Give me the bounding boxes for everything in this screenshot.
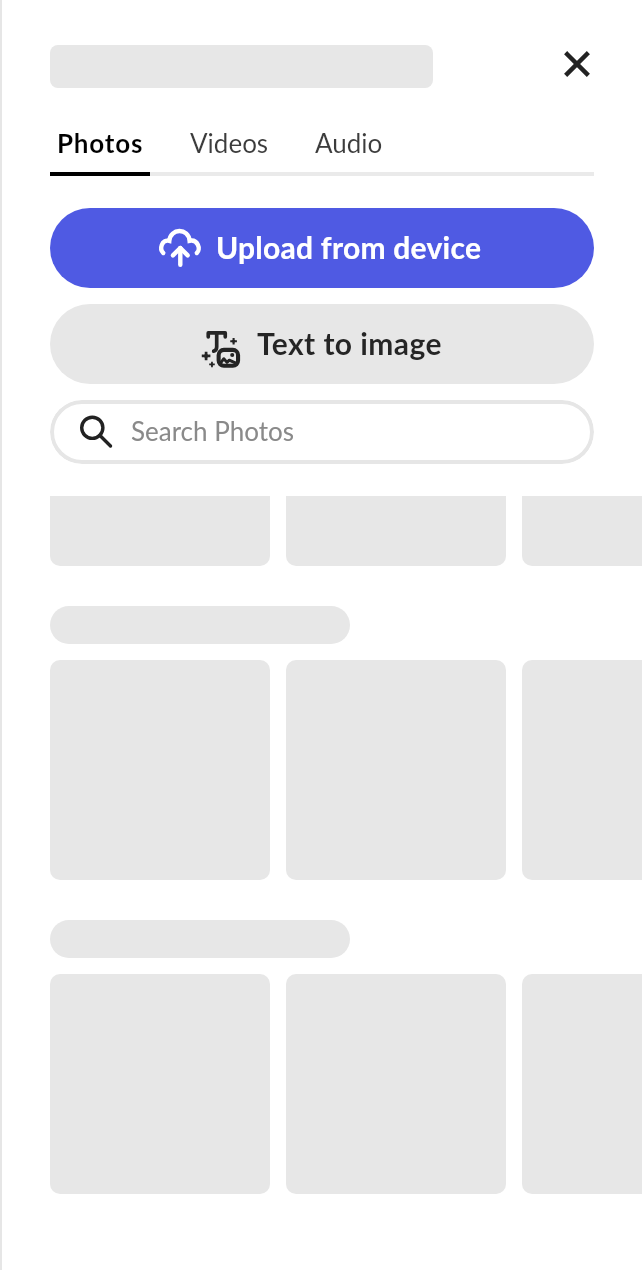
staticText: Audio — [315, 127, 383, 158]
staticText: Search Photos — [131, 415, 294, 446]
button[interactable]: Text to image — [50, 304, 594, 384]
button[interactable]: Videos — [181, 121, 277, 163]
staticText: Text to image — [257, 325, 442, 361]
button[interactable]: Search Photos — [50, 400, 594, 464]
button[interactable]: Audio — [306, 121, 391, 163]
staticText: Photos — [57, 127, 144, 158]
button[interactable]: Photos — [50, 121, 151, 163]
staticText: Upload from device — [216, 229, 482, 265]
button[interactable]: Close — [547, 34, 606, 93]
button[interactable]: Upload from device — [50, 208, 594, 288]
staticText: Videos — [190, 127, 269, 158]
